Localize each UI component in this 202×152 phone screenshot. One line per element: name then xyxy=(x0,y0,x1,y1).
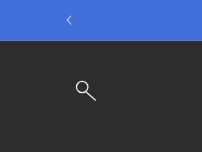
button[interactable]: Back xyxy=(57,8,81,32)
button[interactable]: Search xyxy=(70,75,98,103)
